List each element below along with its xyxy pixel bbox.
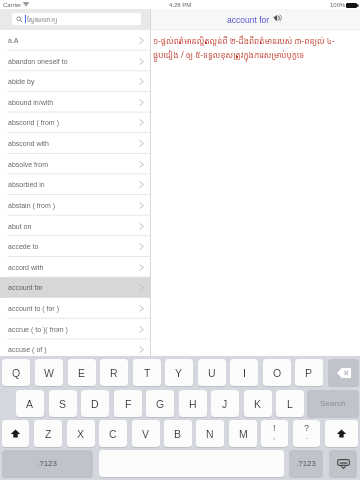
button[interactable]: accuse ( of ) <box>0 339 150 360</box>
button[interactable]: account for <box>227 15 270 24</box>
button[interactable]: V <box>132 420 160 447</box>
staticText: I <box>243 367 246 379</box>
staticText: K <box>254 398 262 410</box>
staticText: B <box>174 428 182 440</box>
button[interactable]: Y <box>165 359 193 386</box>
button[interactable]: account to ( for ) <box>0 298 150 319</box>
button[interactable]: accede to <box>0 236 150 257</box>
staticText: Z <box>45 428 52 440</box>
staticText: O <box>273 367 282 379</box>
button[interactable]: Search <box>307 390 359 417</box>
button[interactable]: K <box>244 390 272 417</box>
staticText: accede to <box>8 243 39 251</box>
button[interactable]: abide by <box>0 71 150 92</box>
staticText: D <box>91 398 99 410</box>
staticText: C <box>109 428 117 440</box>
button[interactable]: F <box>114 390 142 417</box>
staticText: T <box>144 367 151 379</box>
staticText: W <box>44 367 54 379</box>
button[interactable]: accord with <box>0 257 150 278</box>
button[interactable]: U <box>198 359 226 386</box>
staticText: abandon oneself to <box>8 58 68 66</box>
button[interactable]: C <box>99 420 127 447</box>
button[interactable]: D <box>81 390 109 417</box>
staticText: S <box>59 398 67 410</box>
button[interactable]: abscond with <box>0 133 150 154</box>
staticText: abut on <box>8 223 32 231</box>
staticText: Y <box>175 367 183 379</box>
staticText: J <box>222 398 228 410</box>
button[interactable]: O <box>263 359 291 386</box>
staticText: account for <box>8 284 43 292</box>
button[interactable]: abscond ( from ) <box>0 112 150 133</box>
button[interactable]: G <box>146 390 174 417</box>
staticText: L <box>287 398 293 410</box>
staticText: 4:28 PM <box>169 2 192 9</box>
button[interactable]: R <box>100 359 128 386</box>
button[interactable]: abstain ( from ) <box>0 195 150 216</box>
staticText: ១-ផ្តល់ពត៌មានល្អិតល្អន់ពី ២-ដឹងពីពត៌មានរ… <box>153 35 347 60</box>
staticText: R <box>110 367 118 379</box>
staticText: abscond ( from ) <box>8 119 59 127</box>
button[interactable]: a.A <box>0 30 150 51</box>
button[interactable]: ស្វែងរកពាក្យ <box>12 13 141 25</box>
button[interactable]: I <box>230 359 258 386</box>
staticText: Carrier <box>3 2 22 9</box>
staticText: accord with <box>8 264 44 272</box>
button[interactable]: N <box>196 420 224 447</box>
staticText: Q <box>12 367 21 379</box>
staticText: X <box>77 428 85 440</box>
staticText: P <box>305 367 313 379</box>
button[interactable]: L <box>276 390 304 417</box>
button[interactable]: abut on <box>0 216 150 237</box>
button[interactable]: absolve from <box>0 154 150 175</box>
staticText: abstain ( from ) <box>8 202 56 210</box>
button[interactable]: Backspace <box>328 359 359 386</box>
button[interactable]: absorbed in <box>0 174 150 195</box>
button[interactable]: M <box>229 420 257 447</box>
staticText: N <box>206 428 214 440</box>
staticText: accuse ( of ) <box>8 346 47 354</box>
staticText: M <box>239 428 248 440</box>
staticText: ? <box>304 423 310 433</box>
staticText: abound in/with <box>8 99 54 107</box>
button[interactable]: ? <box>293 420 320 447</box>
button[interactable]: Q <box>2 359 30 386</box>
staticText: . <box>306 432 309 441</box>
button[interactable]: .?123 <box>2 450 93 477</box>
button[interactable]: Pronounce <box>273 14 282 22</box>
button[interactable]: W <box>35 359 63 386</box>
button[interactable]: S <box>49 390 77 417</box>
staticText: A <box>26 398 34 410</box>
staticText: E <box>78 367 86 379</box>
staticText: .?123 <box>296 459 317 468</box>
button[interactable]: J <box>211 390 239 417</box>
button[interactable]: .?123 <box>289 450 323 477</box>
staticText: absolve from <box>8 161 49 169</box>
staticText: accrue ( to )( from ) <box>8 326 68 334</box>
button[interactable]: E <box>68 359 96 386</box>
button[interactable]: Shift <box>325 420 358 447</box>
button[interactable]: ! <box>261 420 288 447</box>
button[interactable]: Z <box>34 420 62 447</box>
staticText: V <box>142 428 150 440</box>
button[interactable]: abound in/with <box>0 92 150 113</box>
button[interactable]: A <box>16 390 44 417</box>
button[interactable]: H <box>179 390 207 417</box>
button[interactable]: B <box>164 420 192 447</box>
staticText: ! <box>273 423 276 433</box>
button[interactable]: T <box>133 359 161 386</box>
button[interactable]: Hide keyboard <box>329 450 357 477</box>
button[interactable]: accrue ( to )( from ) <box>0 319 150 340</box>
button[interactable]: account for <box>0 277 150 298</box>
staticText: G <box>156 398 165 410</box>
button[interactable]: Shift <box>2 420 29 447</box>
staticText: abide by <box>8 78 35 86</box>
button[interactable]: abandon oneself to <box>0 51 150 72</box>
button[interactable]: X <box>67 420 95 447</box>
staticText: Search <box>320 399 346 408</box>
button[interactable]: P <box>295 359 323 386</box>
staticText: a.A <box>8 37 19 45</box>
staticText: ស្វែងរកពាក្យ <box>27 15 58 24</box>
